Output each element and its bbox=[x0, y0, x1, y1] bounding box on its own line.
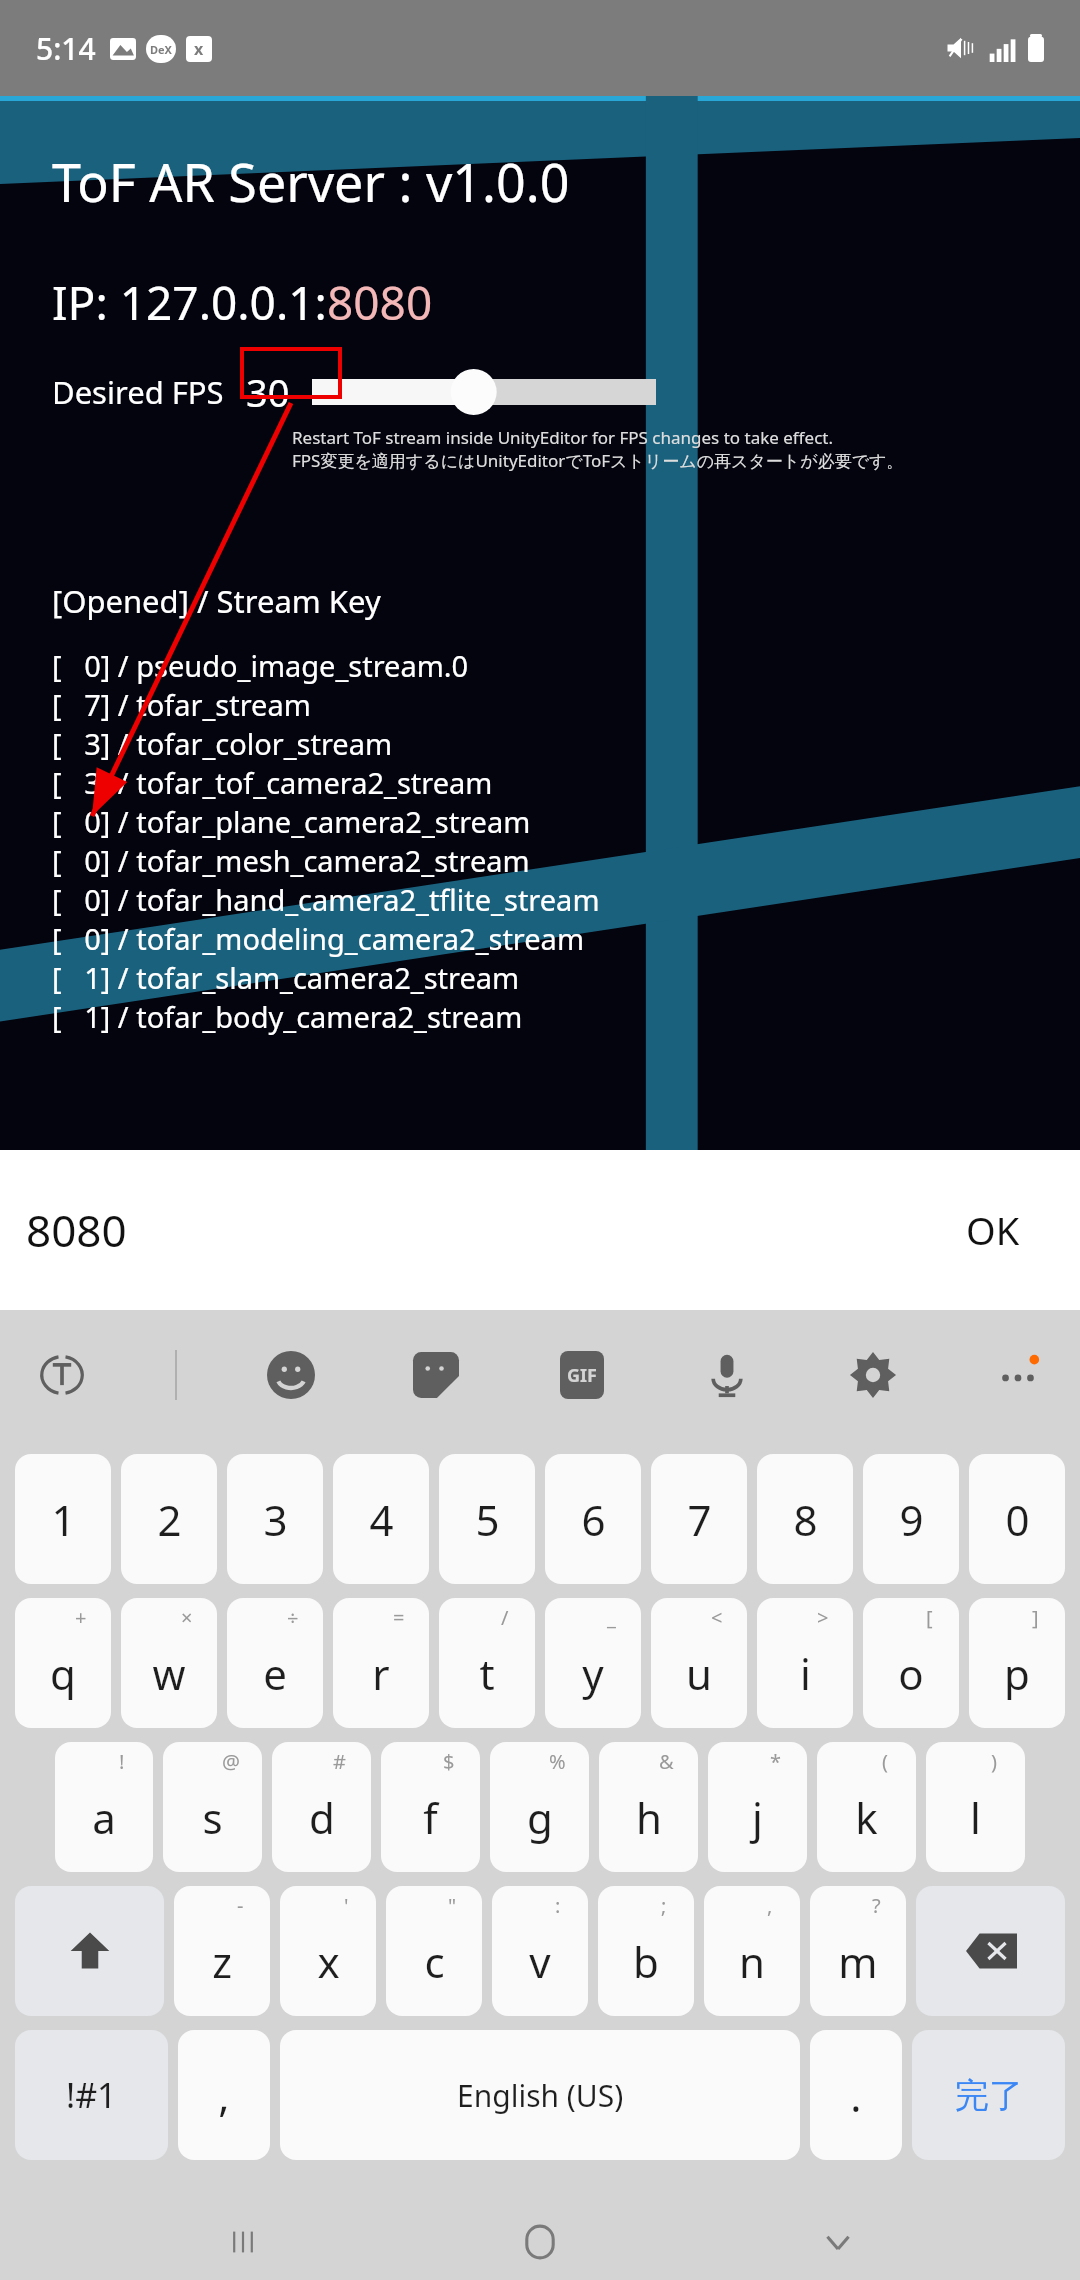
button[interactable]: 5 bbox=[439, 1454, 535, 1584]
staticText: g bbox=[527, 1789, 553, 1846]
button[interactable]: < bbox=[651, 1598, 747, 1728]
button[interactable]: 8080 bbox=[0, 1150, 1080, 1310]
staticText: h bbox=[636, 1789, 662, 1846]
staticText: r bbox=[372, 1645, 390, 1702]
button[interactable] bbox=[312, 367, 656, 417]
button[interactable]: 1 bbox=[15, 1454, 111, 1584]
button[interactable]: [ bbox=[863, 1598, 959, 1728]
button[interactable]: 4 bbox=[333, 1454, 429, 1584]
button[interactable]: Hide keyboard bbox=[783, 2204, 893, 2280]
staticText: 5 bbox=[475, 1491, 500, 1548]
staticText: × bbox=[181, 1604, 193, 1631]
staticText: [ 0] / tofar_mesh_camera2_stream bbox=[52, 841, 530, 880]
button[interactable]: . bbox=[810, 2030, 902, 2160]
staticText: FPS変更を適用するにはUnityEditorでToFストリームの再スタートが必… bbox=[292, 449, 904, 472]
staticText: ; bbox=[661, 1892, 667, 1919]
staticText: ' bbox=[344, 1892, 349, 1919]
staticText: o bbox=[898, 1645, 924, 1702]
button[interactable]: English (US) bbox=[280, 2030, 800, 2160]
button[interactable]: ; bbox=[598, 1886, 694, 2016]
button[interactable]: , bbox=[178, 2030, 270, 2160]
button[interactable]: 9 bbox=[863, 1454, 959, 1584]
button[interactable]: $ bbox=[381, 1742, 480, 1872]
staticText: IP: 127.0.0.1: bbox=[52, 271, 327, 334]
button[interactable]: 2 bbox=[121, 1454, 217, 1584]
staticText: - bbox=[237, 1892, 244, 1919]
staticText: [ 0] / pseudo_image_stream.0 bbox=[52, 646, 469, 685]
button[interactable]: Settings bbox=[841, 1343, 905, 1407]
button[interactable]: 3 bbox=[227, 1454, 323, 1584]
button[interactable]: Stickers bbox=[404, 1343, 468, 1407]
button[interactable]: ] bbox=[969, 1598, 1065, 1728]
staticText: c bbox=[424, 1933, 445, 1990]
staticText: & bbox=[659, 1748, 674, 1775]
staticText: " bbox=[448, 1892, 457, 1919]
staticText: p bbox=[1004, 1645, 1030, 1702]
staticText: x bbox=[317, 1933, 340, 1990]
button[interactable]: 8 bbox=[757, 1454, 853, 1584]
button[interactable]: : bbox=[492, 1886, 588, 2016]
staticText: Restart ToF stream inside UnityEditor fo… bbox=[292, 426, 833, 449]
button[interactable]: _ bbox=[545, 1598, 641, 1728]
button[interactable]: ( bbox=[817, 1742, 916, 1872]
button[interactable]: Recent apps bbox=[188, 2204, 298, 2280]
button[interactable]: " bbox=[386, 1886, 482, 2016]
button[interactable]: , bbox=[704, 1886, 800, 2016]
staticText: English (US) bbox=[457, 2075, 624, 2116]
staticText: ToF AR Server : v1.0.0 bbox=[52, 146, 570, 217]
button[interactable]: % bbox=[490, 1742, 589, 1872]
button[interactable]: Shift bbox=[15, 1886, 164, 2016]
button[interactable]: GIF bbox=[550, 1343, 614, 1407]
button[interactable]: 7 bbox=[651, 1454, 747, 1584]
staticText: # bbox=[333, 1748, 346, 1775]
button[interactable]: # bbox=[272, 1742, 371, 1872]
button[interactable]: × bbox=[121, 1598, 217, 1728]
staticText: 完了 bbox=[955, 2074, 1023, 2117]
staticText: % bbox=[549, 1748, 566, 1775]
button[interactable]: Home bbox=[485, 2204, 595, 2280]
staticText: [Opened] / Stream Key bbox=[52, 580, 381, 622]
button[interactable]: Voice input bbox=[695, 1343, 759, 1407]
staticText: l bbox=[970, 1789, 981, 1846]
staticText: a bbox=[92, 1789, 116, 1846]
staticText: y bbox=[582, 1645, 604, 1702]
staticText: 1 bbox=[51, 1491, 76, 1548]
button[interactable]: ? bbox=[810, 1886, 906, 2016]
button[interactable]: ! bbox=[55, 1742, 153, 1872]
button[interactable]: & bbox=[599, 1742, 698, 1872]
staticText: i bbox=[800, 1645, 811, 1702]
button[interactable]: OK bbox=[966, 1204, 1020, 1256]
button[interactable]: ÷ bbox=[227, 1598, 323, 1728]
button[interactable]: ' bbox=[280, 1886, 376, 2016]
button[interactable]: + bbox=[15, 1598, 111, 1728]
button[interactable]: * bbox=[708, 1742, 807, 1872]
staticText: 2 bbox=[157, 1491, 182, 1548]
staticText: b bbox=[633, 1933, 659, 1990]
staticText: 7 bbox=[687, 1491, 712, 1548]
staticText: 0 bbox=[1005, 1491, 1030, 1548]
button[interactable]: @ bbox=[163, 1742, 262, 1872]
staticText: [ 3] / tofar_color_stream bbox=[52, 724, 393, 763]
staticText: : bbox=[555, 1892, 561, 1919]
staticText: . bbox=[850, 2067, 862, 2124]
button[interactable]: Backspace bbox=[916, 1886, 1065, 2016]
button[interactable]: More options bbox=[986, 1343, 1050, 1407]
button[interactable]: > bbox=[757, 1598, 853, 1728]
button[interactable]: 完了 bbox=[912, 2030, 1065, 2160]
staticText: , bbox=[218, 2067, 230, 2124]
button[interactable]: !#1 bbox=[15, 2030, 168, 2160]
staticText: 6 bbox=[581, 1491, 606, 1548]
button[interactable]: Translate bbox=[30, 1343, 94, 1407]
staticText: 9 bbox=[899, 1491, 924, 1548]
button[interactable]: 6 bbox=[545, 1454, 641, 1584]
staticText: ÷ bbox=[287, 1604, 299, 1631]
button[interactable]: 0 bbox=[969, 1454, 1065, 1584]
staticText: t bbox=[479, 1645, 495, 1702]
button[interactable]: ) bbox=[926, 1742, 1025, 1872]
staticText: [ 0] / tofar_modeling_camera2_stream bbox=[52, 919, 585, 958]
button[interactable]: / bbox=[439, 1598, 535, 1728]
button[interactable]: - bbox=[174, 1886, 270, 2016]
button[interactable]: Emoji bbox=[259, 1343, 323, 1407]
staticText: ) bbox=[991, 1748, 997, 1775]
button[interactable]: = bbox=[333, 1598, 429, 1728]
